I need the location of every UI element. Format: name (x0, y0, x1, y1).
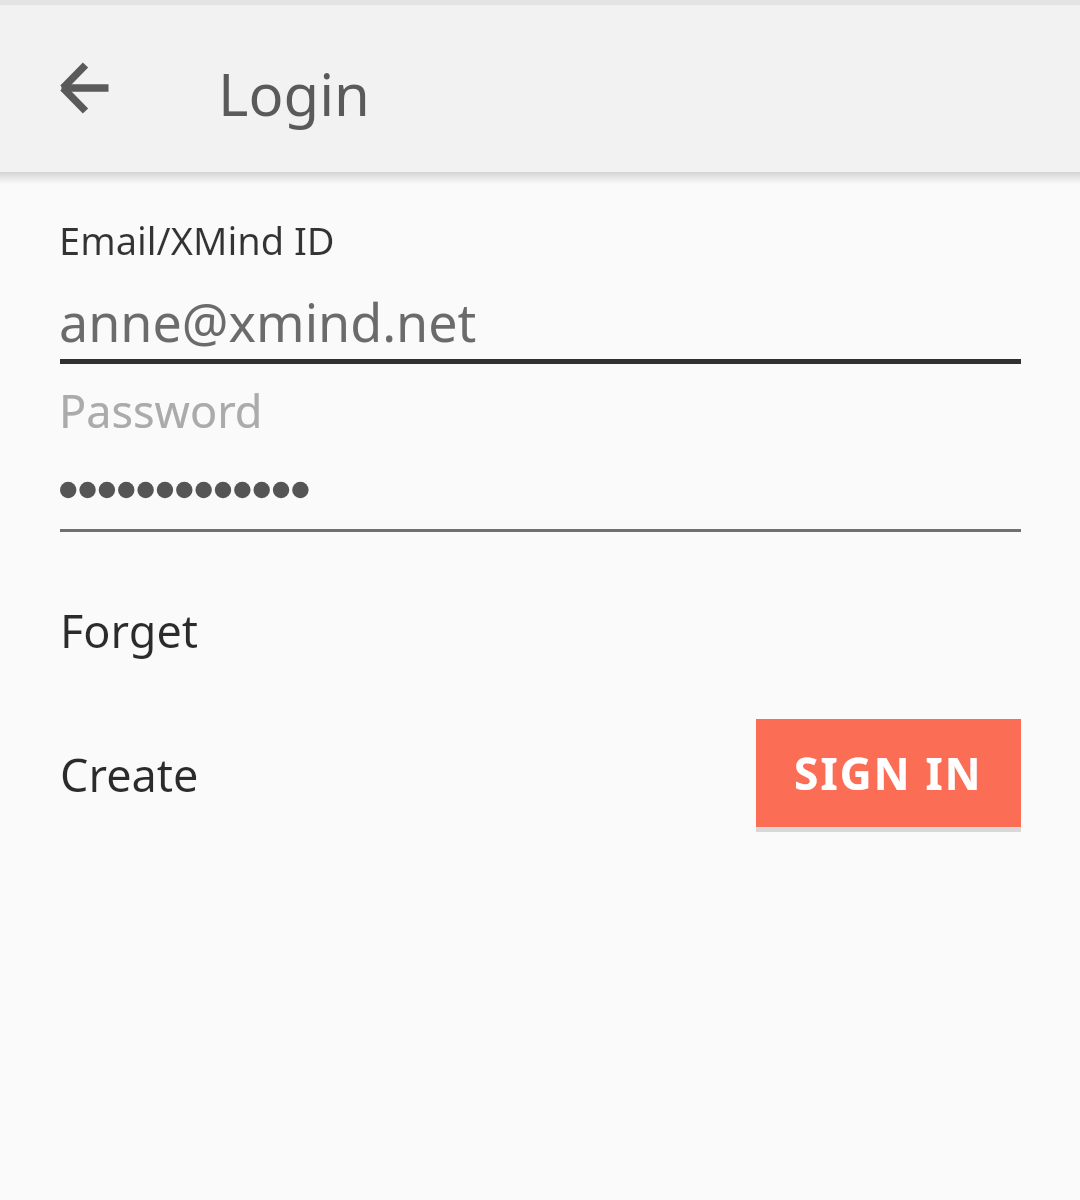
staticText: SIGN IN (794, 743, 983, 803)
staticText: Email/XMind ID (59, 214, 335, 266)
staticText: Login (218, 54, 370, 133)
button[interactable]: SIGN IN (756, 719, 1021, 827)
staticText: Create account (60, 744, 345, 806)
button[interactable]: Back (29, 32, 141, 144)
button[interactable]: Forget password? (60, 600, 396, 662)
staticText: Password (59, 380, 263, 441)
button[interactable]: Create account (60, 744, 345, 806)
staticText: anne@xmind.net (59, 286, 477, 357)
staticText: Forget password? (60, 600, 396, 662)
